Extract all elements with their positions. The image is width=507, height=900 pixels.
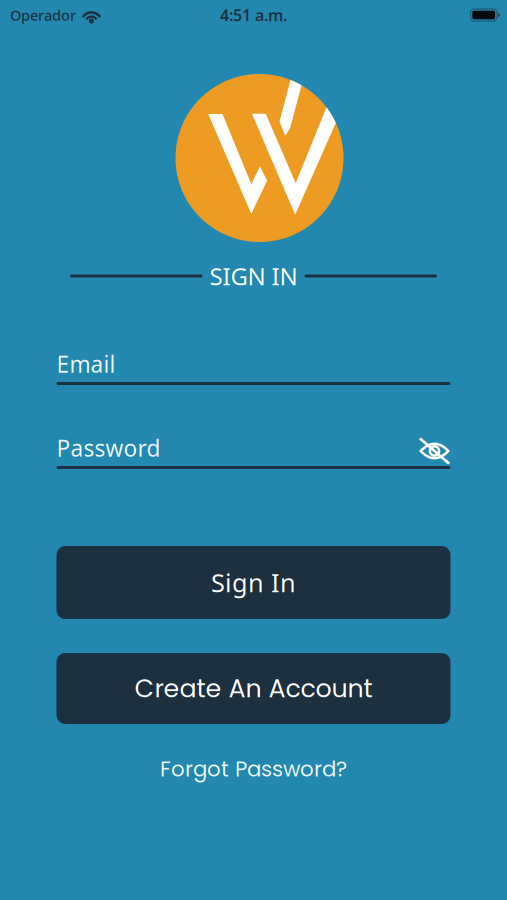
staticText: Create An Account xyxy=(134,671,372,706)
button[interactable]: Forgot Password? xyxy=(160,750,347,788)
staticText: Password xyxy=(56,433,160,463)
staticText: Email xyxy=(56,349,115,379)
button[interactable]: Sign In xyxy=(56,546,450,619)
staticText: 4:51 a.m. xyxy=(220,4,287,26)
staticText: SIGN IN xyxy=(209,260,297,292)
button[interactable]: Show password xyxy=(418,434,450,462)
staticText: Sign In xyxy=(211,566,296,599)
button[interactable]: Create An Account xyxy=(56,653,450,724)
staticText: Forgot Password? xyxy=(160,754,347,784)
staticText: Operador xyxy=(10,5,76,25)
